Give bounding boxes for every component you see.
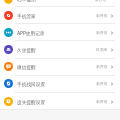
staticText: 未开启 [96,64,108,69]
button[interactable]: 久坐提醒 [0,41,120,58]
staticText: APP使用记录 [17,30,45,36]
other: Open [110,31,114,35]
staticText: 微信提醒 [17,64,36,70]
other: Open [110,65,114,69]
staticText: 未开启 [96,13,108,18]
other: Open [110,82,114,86]
staticText: 手机找回设置 [17,81,46,87]
staticText: 未开启 [96,30,108,35]
staticText: 已关闭 [96,47,108,52]
button[interactable]: 遗失提醒设置 [0,93,120,110]
other: Open [110,100,114,104]
button[interactable]: 手机管家 [0,7,120,24]
staticText: 久坐提醒 [17,47,36,53]
button[interactable]: 手机找回设置 [0,75,120,92]
staticText: 未开启 [95,0,107,2]
staticText: 手机管家 [17,13,36,19]
other: Open [110,48,114,52]
staticText: 遗失提醒设置 [17,99,46,105]
staticText: 未开启 [96,99,108,104]
button[interactable]: 微信提醒 [0,58,120,75]
staticText: 未开启 [96,81,108,86]
button[interactable]: APP使用记录 [0,24,120,41]
other: Open [110,14,114,18]
staticText: 心率监测 [17,0,36,2]
